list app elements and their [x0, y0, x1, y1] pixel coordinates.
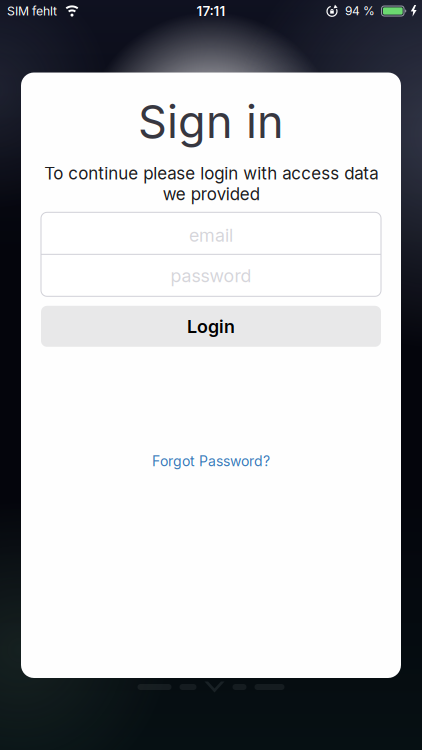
staticText: Forgot Password? [152, 453, 270, 469]
button[interactable]: Forgot Password? [152, 453, 270, 469]
staticText: 17:11 [196, 3, 225, 19]
staticText: SIM fehlt [7, 4, 57, 18]
staticText: Login [187, 316, 235, 337]
staticText: password [170, 265, 251, 286]
button[interactable]: email [41, 212, 381, 254]
staticText: Sign in [138, 94, 284, 149]
staticText: To continue please login with access dat… [44, 163, 378, 204]
button[interactable]: Login [41, 306, 381, 347]
button[interactable]: password [41, 255, 381, 296]
staticText: email [189, 224, 233, 246]
staticText: 94 % [345, 4, 375, 18]
